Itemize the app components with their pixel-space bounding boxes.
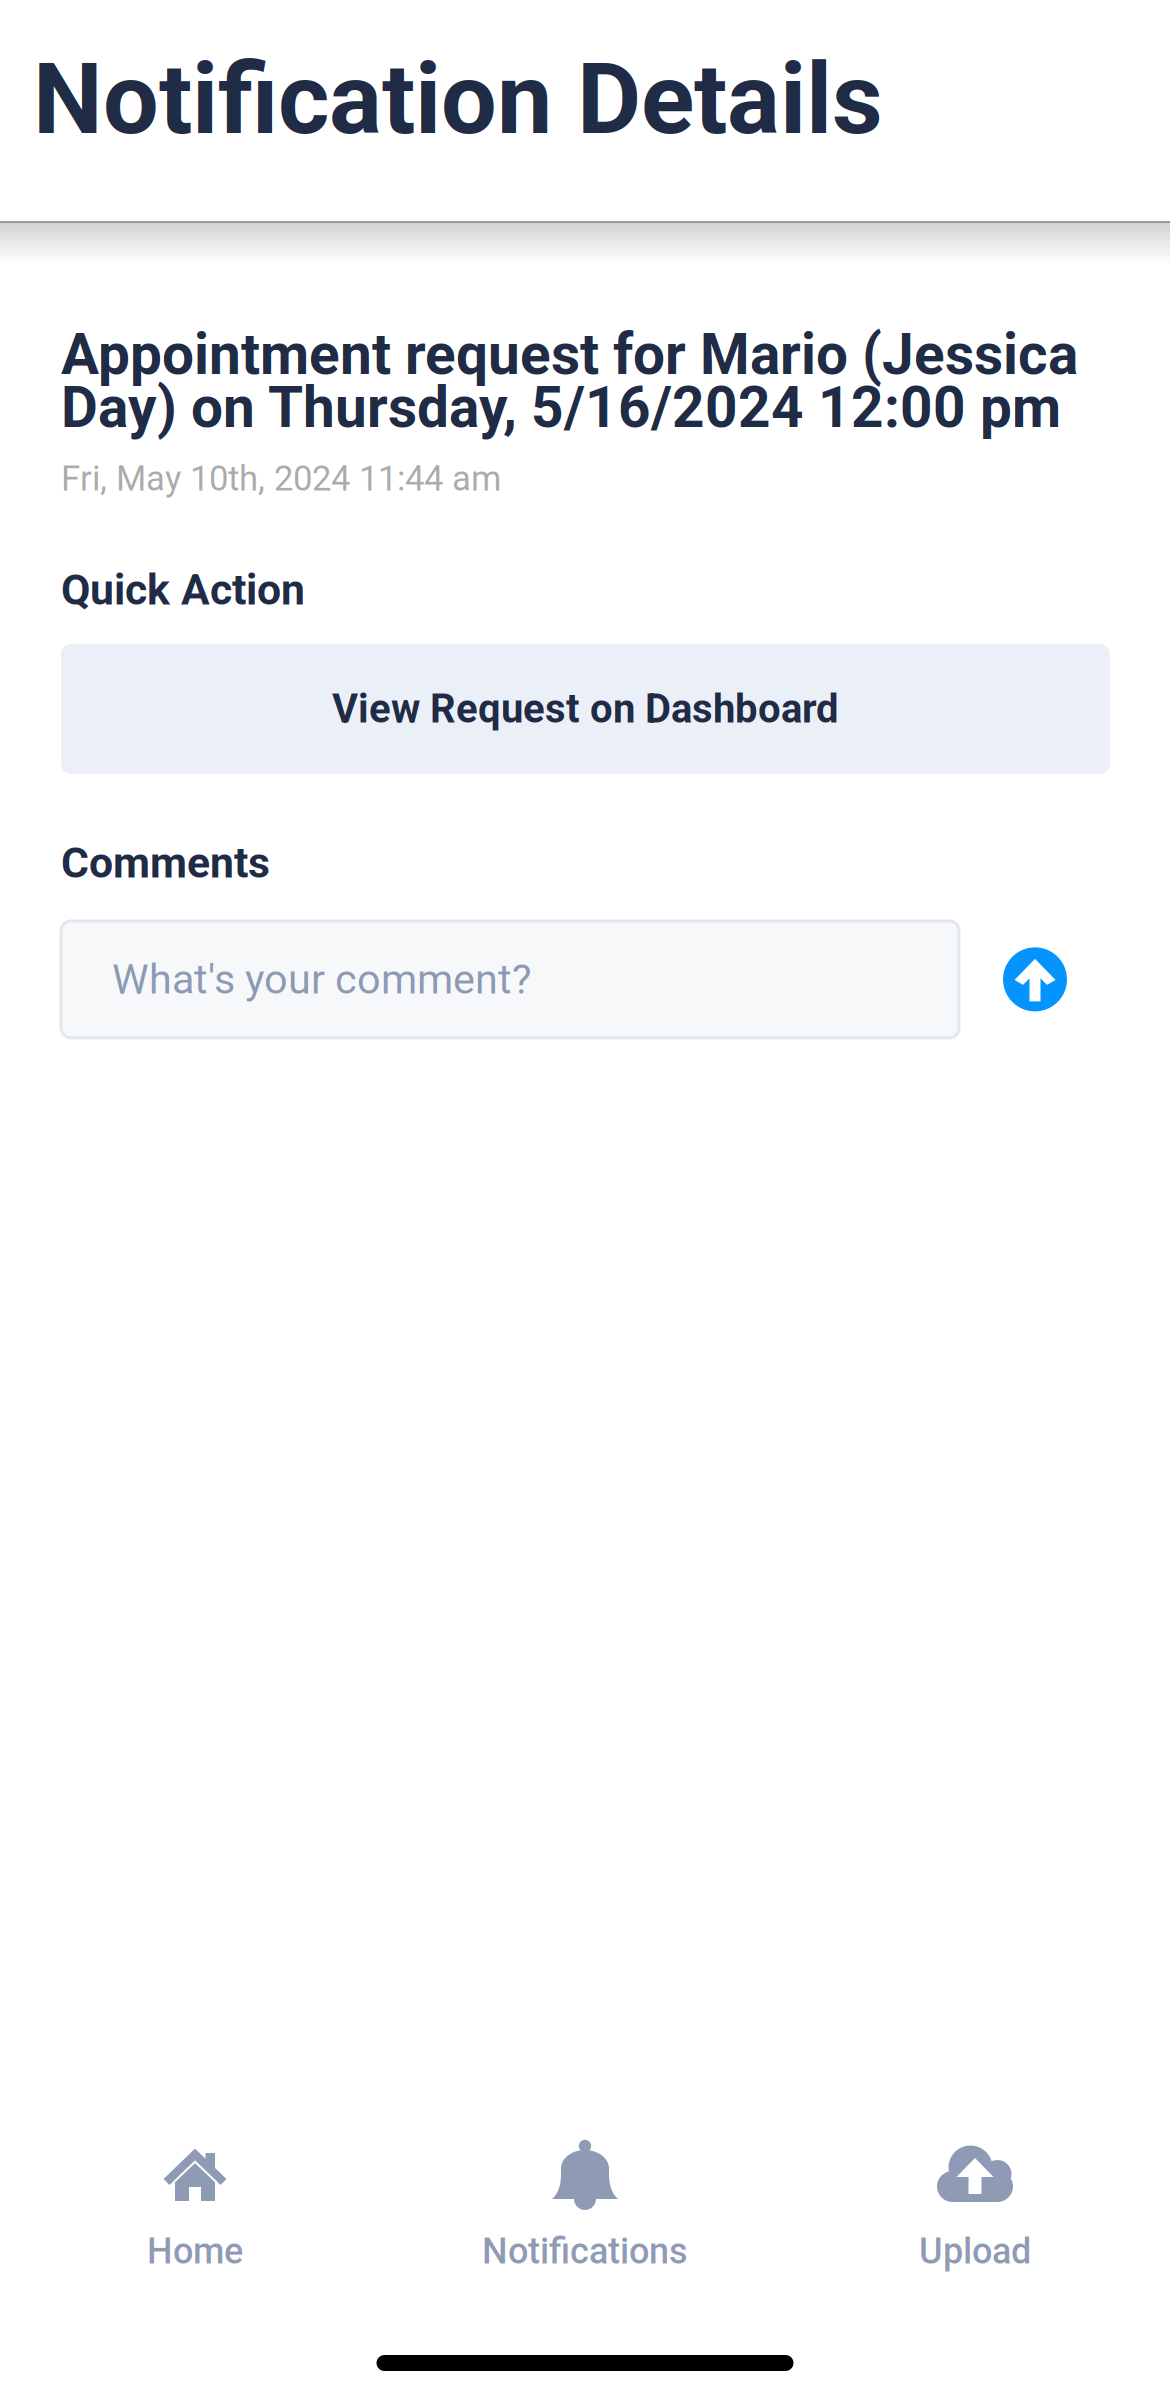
staticText: Home	[147, 2230, 243, 2272]
button[interactable]: Upload	[780, 2140, 1170, 2300]
staticText: Fri, May 10th, 2024 11:44 am	[61, 458, 501, 499]
staticText: Appointment request for Mario (Jessica D…	[61, 328, 1078, 434]
button[interactable]: View Request on Dashboard	[61, 644, 1110, 774]
staticText: View Request on Dashboard	[332, 685, 839, 732]
button[interactable]: Notifications	[390, 2140, 780, 2300]
staticText: What's your comment?	[112, 955, 532, 1004]
staticText: Notification Details	[33, 41, 883, 157]
button[interactable]: Home	[0, 2140, 390, 2300]
button[interactable]: Send comment	[1003, 947, 1067, 1011]
staticText: Notifications	[482, 2230, 688, 2272]
staticText: Comments	[61, 838, 270, 888]
staticText: Quick Action	[61, 565, 305, 615]
staticText: Upload	[919, 2230, 1031, 2272]
